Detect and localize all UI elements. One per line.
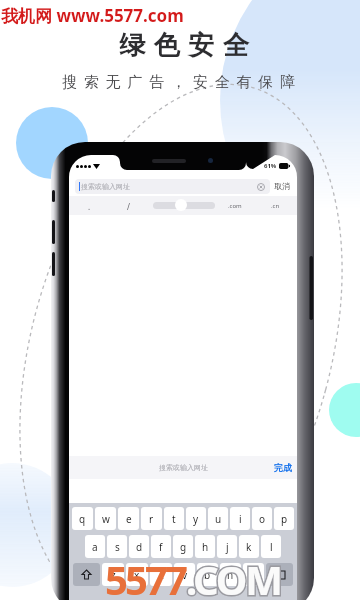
staticText: o	[259, 512, 266, 526]
button[interactable]: k	[239, 535, 259, 558]
button[interactable]: w	[95, 507, 116, 530]
button[interactable]: x	[126, 563, 148, 586]
button[interactable]: q	[72, 507, 93, 530]
staticText: l	[270, 540, 273, 554]
staticText: b	[204, 568, 211, 582]
button[interactable]: h	[195, 535, 215, 558]
staticText: i	[239, 512, 242, 526]
button[interactable]: Shift	[73, 563, 100, 586]
staticText: 取消	[274, 181, 290, 191]
button[interactable]: f	[151, 535, 171, 558]
button[interactable]: u	[208, 507, 228, 530]
staticText: q	[79, 512, 86, 526]
staticText: g	[180, 540, 187, 554]
button[interactable]: c	[150, 563, 172, 586]
staticText: .	[88, 201, 91, 212]
button[interactable]: i	[230, 507, 250, 530]
staticText: .cn	[271, 202, 280, 210]
button[interactable]: v	[174, 563, 195, 586]
button[interactable]: d	[129, 535, 149, 558]
button[interactable]: l	[261, 535, 281, 558]
staticText: 我机网 www.5577.com	[1, 4, 184, 27]
staticText: t	[172, 512, 176, 526]
staticText: .COM	[186, 552, 281, 600]
button[interactable]: n	[220, 563, 241, 586]
staticText: f	[159, 540, 163, 554]
staticText: v	[182, 568, 188, 582]
staticText: e	[126, 512, 132, 526]
button[interactable]: a	[85, 535, 105, 558]
staticText: /	[127, 201, 130, 212]
button[interactable]: 搜索或输入网址	[75, 179, 270, 194]
button[interactable]: o	[252, 507, 272, 530]
staticText: m	[249, 568, 259, 582]
staticText: 完成	[274, 462, 292, 473]
staticText: n	[227, 568, 234, 582]
staticText: k	[246, 540, 252, 554]
button[interactable]: Delete	[266, 563, 293, 586]
staticText: u	[215, 512, 222, 526]
staticText: .COM	[186, 552, 281, 600]
button[interactable]: e	[118, 507, 139, 530]
button[interactable]: t	[164, 507, 184, 530]
staticText: 搜索或输入网址	[159, 463, 208, 472]
staticText: 搜索或输入网址	[81, 182, 130, 191]
staticText: y	[193, 512, 199, 526]
button[interactable]: s	[107, 535, 127, 558]
staticText: 绿色安全	[115, 29, 253, 62]
staticText: d	[136, 540, 143, 554]
staticText: 61%	[264, 162, 277, 170]
staticText: x	[134, 568, 140, 582]
button[interactable]: 完成	[274, 462, 292, 473]
staticText: r	[149, 512, 154, 526]
staticText: a	[92, 540, 98, 554]
button[interactable]: z	[102, 563, 124, 586]
button[interactable]: r	[141, 507, 162, 530]
button[interactable]: b	[197, 563, 218, 586]
staticText: s	[115, 540, 120, 554]
staticText: w	[102, 512, 110, 526]
staticText: j	[226, 540, 229, 554]
button[interactable]: g	[173, 535, 193, 558]
button[interactable]: 取消	[274, 181, 290, 191]
staticText: 搜索无广告，安全有保障	[62, 73, 302, 92]
button[interactable]: y	[186, 507, 206, 530]
staticText: z	[111, 568, 116, 582]
button[interactable]: p	[274, 507, 294, 530]
staticText: h	[202, 540, 209, 554]
staticText: .com	[228, 202, 242, 210]
staticText: p	[281, 512, 288, 526]
button[interactable]: m	[243, 563, 264, 586]
staticText: c	[159, 568, 164, 582]
staticText: 5577	[105, 552, 185, 600]
button[interactable]: j	[217, 535, 237, 558]
